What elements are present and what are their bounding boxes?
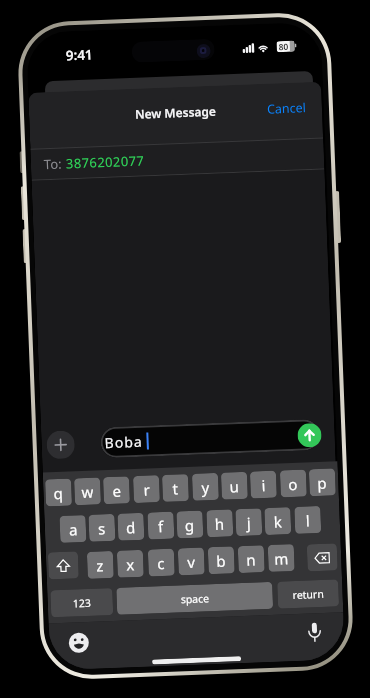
staticText: h [214,514,225,534]
button[interactable]: e [103,476,130,504]
staticText: v [187,552,196,572]
button[interactable]: Cancel [258,94,314,122]
staticText: n [246,549,257,570]
staticText: x [126,554,135,574]
staticText: New Message [135,103,216,122]
staticText: 80 [278,41,289,52]
staticText: 9:41 [65,45,93,64]
button[interactable]: h [206,509,233,537]
staticText: p [317,473,328,493]
button[interactable] [297,423,322,448]
staticText: e [112,481,122,501]
staticText: c [157,553,166,573]
staticText: a [69,519,78,540]
button[interactable]: y [192,473,219,501]
staticText: b [216,551,227,571]
button[interactable]: x [117,550,144,578]
staticText: q [53,483,64,503]
button[interactable]: g [176,510,203,538]
button[interactable] [46,430,75,459]
button[interactable]: return [277,579,339,609]
staticText: To: [44,154,66,173]
staticText: o [288,474,299,494]
button[interactable] [307,543,338,571]
staticText: 3876202077 [66,151,145,172]
staticText: 123 [72,596,92,610]
staticText: Boba [104,432,144,452]
button[interactable]: f [147,512,174,540]
staticText: w [81,482,94,502]
staticText: i [261,475,266,495]
button[interactable] [66,630,91,655]
button[interactable]: 123 [50,588,113,617]
staticText: Cancel [267,99,306,118]
staticText: y [201,477,210,497]
button[interactable]: m [268,544,295,572]
staticText: g [184,515,195,535]
button[interactable]: j [235,508,262,536]
staticText: d [125,517,136,537]
button[interactable]: p [309,468,336,496]
button[interactable]: d [117,513,144,541]
button[interactable]: b [208,546,235,574]
staticText: j [246,513,251,533]
button[interactable]: i [250,471,277,499]
staticText: z [96,555,105,576]
button[interactable] [302,620,326,645]
button[interactable]: a [59,515,86,543]
button[interactable]: r [133,475,160,503]
staticText: f [157,516,164,536]
button[interactable]: k [264,507,291,535]
button[interactable]: o [280,469,307,497]
button[interactable]: z [87,551,114,579]
button[interactable]: space [116,582,273,615]
staticText: k [273,511,283,532]
button[interactable]: v [178,547,205,575]
staticText: m [274,548,290,569]
staticText: return [292,587,325,602]
staticText: t [172,478,179,499]
staticText: u [229,476,240,496]
button[interactable]: w [74,477,101,505]
staticText: space [180,591,210,606]
button[interactable]: t [162,474,189,502]
button[interactable]: u [221,472,248,500]
button[interactable] [48,551,79,579]
button[interactable]: c [148,549,175,577]
staticText: l [305,510,310,530]
button[interactable]: l [294,506,321,534]
staticText: s [98,518,106,538]
staticText: r [143,479,151,500]
button[interactable]: s [88,514,115,542]
button[interactable]: q [45,478,72,506]
button[interactable]: n [238,545,265,573]
